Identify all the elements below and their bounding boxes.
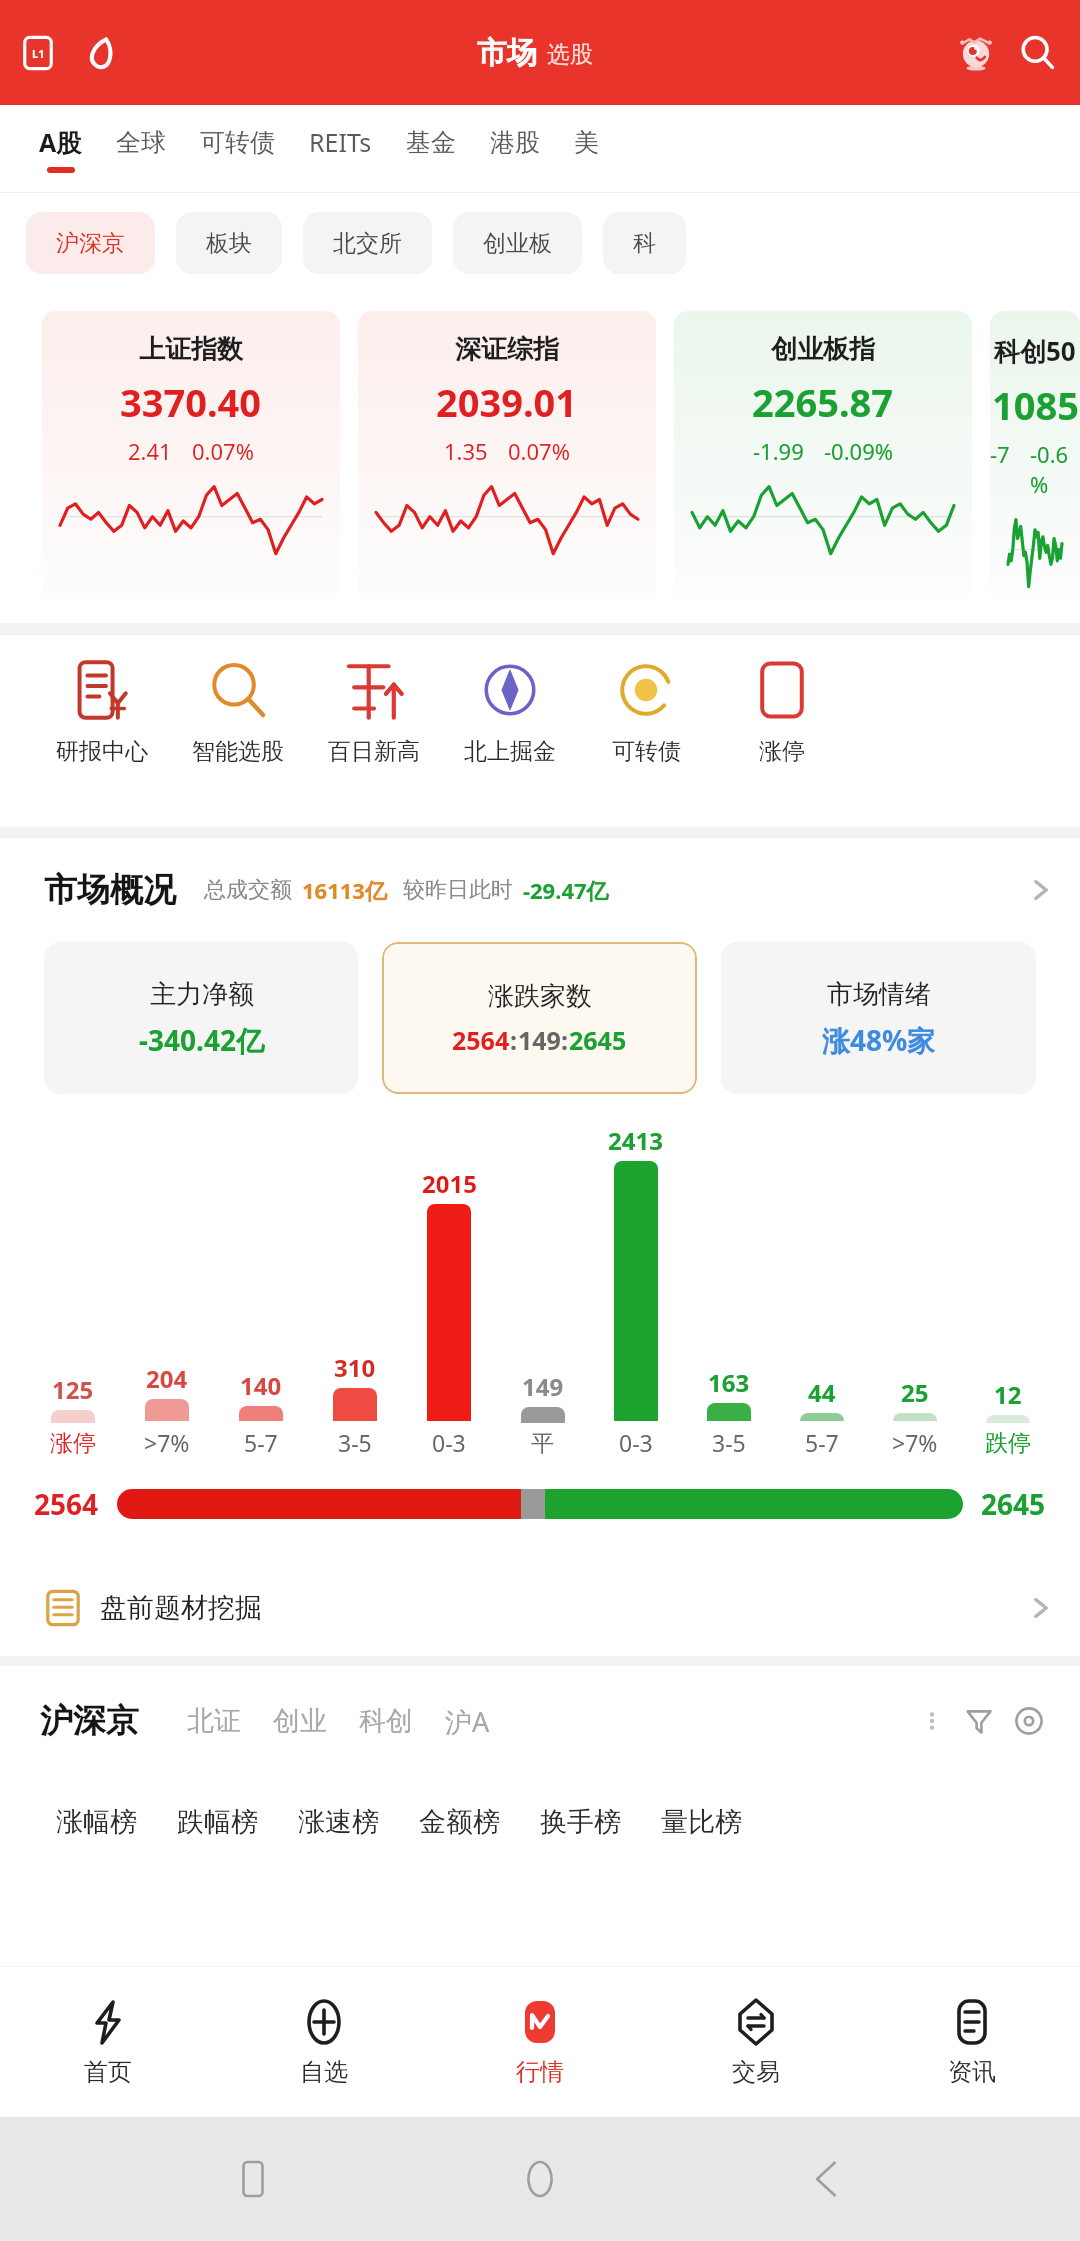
staticText: 创业 — [273, 1704, 327, 1738]
button[interactable]: 板块 — [176, 212, 282, 274]
staticText: 5-7 — [244, 1427, 278, 1458]
button[interactable]: 深证综指 — [358, 311, 656, 601]
button[interactable]: Home — [505, 2144, 575, 2214]
button[interactable]: Settings — [1004, 1696, 1054, 1746]
staticText: 1.35 — [444, 436, 488, 466]
staticText: 3370.40 — [120, 376, 262, 428]
button[interactable]: 北交所 — [303, 212, 432, 274]
button[interactable]: 北上掘金 — [442, 657, 578, 766]
staticText: 跌停 — [985, 1429, 1031, 1458]
staticText: 市场 — [477, 34, 537, 72]
button[interactable]: 创业板 — [453, 212, 582, 274]
staticText: 涨停 — [50, 1429, 96, 1458]
button[interactable]: 科创 — [343, 1704, 429, 1738]
button[interactable]: 市场概况 — [0, 838, 1080, 942]
staticText: 北上掘金 — [464, 737, 556, 766]
staticText: 125 — [52, 1373, 94, 1406]
staticText: 板块 — [206, 229, 252, 258]
button[interactable]: Night mode — [72, 29, 120, 77]
button[interactable]: 自选 — [216, 1967, 432, 2117]
staticText: 3-5 — [712, 1427, 746, 1458]
staticText: 换手榜 — [540, 1805, 621, 1839]
button[interactable]: 市场 — [477, 34, 593, 72]
staticText: : — [510, 1023, 518, 1057]
staticText: 金额榜 — [419, 1805, 500, 1839]
button[interactable]: 涨速榜 — [278, 1805, 399, 1839]
button[interactable]: 盘前题材挖掘 — [0, 1560, 1080, 1656]
button[interactable]: 科 — [603, 212, 686, 274]
button[interactable]: 美 — [557, 105, 616, 193]
button[interactable]: 交易 — [648, 1967, 864, 2117]
staticText: 深证综指 — [455, 333, 559, 366]
staticText: 可转债 — [200, 127, 275, 158]
button[interactable]: 涨幅榜 — [36, 1805, 157, 1839]
button[interactable]: Back — [793, 2144, 863, 2214]
staticText: 沪A — [445, 1703, 490, 1740]
staticText: 2645 — [569, 1023, 627, 1057]
button[interactable]: 可转债 — [183, 105, 292, 193]
staticText: 沪深京 — [56, 229, 125, 258]
button[interactable]: Assistant — [950, 27, 1002, 79]
button[interactable]: Search — [1012, 27, 1064, 79]
button[interactable]: 上证指数 — [42, 311, 340, 601]
button[interactable]: 资讯 — [864, 1967, 1080, 2117]
staticText: 交易 — [732, 2057, 780, 2087]
staticText: -7 — [990, 439, 1010, 469]
staticText: 5-7 — [805, 1427, 839, 1458]
button[interactable]: 涨跌家数 — [382, 942, 697, 1094]
staticText: : — [561, 1023, 569, 1057]
button[interactable]: 量比榜 — [641, 1805, 762, 1839]
staticText: 港股 — [490, 127, 540, 158]
staticText: 北证 — [187, 1704, 241, 1738]
staticText: REITs — [309, 125, 372, 159]
staticText: 2.41 — [128, 436, 172, 466]
staticText: 创业板指 — [771, 333, 875, 366]
button[interactable]: 沪深京 — [26, 212, 155, 274]
button[interactable]: 换手榜 — [520, 1805, 641, 1839]
button[interactable]: 首页 — [0, 1967, 216, 2117]
staticText: 北交所 — [333, 229, 402, 258]
staticText: 涨跌家数 — [488, 980, 592, 1013]
button[interactable]: 涨停 — [714, 657, 850, 766]
staticText: 0.07% — [192, 436, 254, 466]
button[interactable]: More — [910, 1699, 954, 1743]
staticText: 1085 — [992, 379, 1079, 431]
button[interactable]: 北证 — [171, 1704, 257, 1738]
button[interactable]: Level 1 quotes — [14, 29, 62, 77]
button[interactable]: 创业 — [257, 1704, 343, 1738]
staticText: 涨48%家 — [822, 1021, 936, 1059]
staticText: 研报中心 — [56, 737, 148, 766]
button[interactable]: 行情 — [432, 1967, 648, 2117]
staticText: 智能选股 — [192, 737, 284, 766]
staticText: 资讯 — [948, 2057, 996, 2087]
button[interactable]: 科创50 — [990, 311, 1080, 601]
button[interactable]: 研报中心 — [34, 657, 170, 766]
button[interactable]: 智能选股 — [170, 657, 306, 766]
button[interactable]: 沪深京 — [40, 1700, 139, 1742]
staticText: 2015 — [422, 1167, 477, 1200]
button[interactable]: 主力净额 — [44, 942, 358, 1094]
staticText: 涨停 — [759, 737, 805, 766]
button[interactable]: 沪A — [429, 1703, 506, 1740]
staticText: -340.42亿 — [139, 1021, 264, 1059]
button[interactable]: 跌幅榜 — [157, 1805, 278, 1839]
staticText: 310 — [334, 1351, 376, 1384]
staticText: 3-5 — [338, 1427, 372, 1458]
staticText: 科创50 — [994, 333, 1076, 369]
button[interactable]: Recents — [218, 2144, 288, 2214]
button[interactable]: 全球 — [99, 105, 183, 193]
button[interactable]: Filter — [954, 1696, 1004, 1746]
staticText: 可转债 — [612, 737, 681, 766]
button[interactable]: 可转债 — [578, 657, 714, 766]
button[interactable]: REITs — [292, 105, 389, 193]
staticText: 140 — [240, 1369, 282, 1402]
button[interactable]: 百日新高 — [306, 657, 442, 766]
staticText: A股 — [39, 125, 82, 159]
button[interactable]: 基金 — [389, 105, 473, 193]
button[interactable]: A股 — [22, 105, 99, 193]
button[interactable]: 金额榜 — [399, 1805, 520, 1839]
button[interactable]: 港股 — [473, 105, 557, 193]
staticText: 0.07% — [508, 436, 570, 466]
button[interactable]: 市场情绪 — [721, 942, 1036, 1094]
button[interactable]: 创业板指 — [674, 311, 972, 601]
